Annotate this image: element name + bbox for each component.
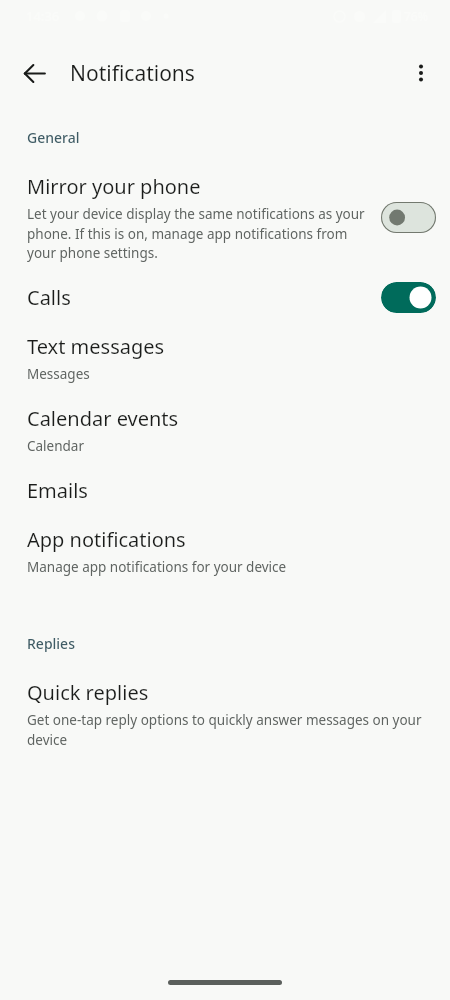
button[interactable]: Back: [12, 51, 56, 95]
staticText: Emails: [27, 477, 88, 504]
staticText: Notifications: [70, 59, 195, 88]
staticText: Get one-tap reply options to quickly ans…: [27, 711, 432, 749]
staticText: Calls: [27, 284, 381, 311]
staticText: Manage app notifications for your device: [27, 558, 287, 576]
button[interactable]: Emails: [0, 477, 450, 504]
staticText: Text messages: [27, 333, 165, 360]
staticText: Let your device display the same notific…: [27, 205, 367, 262]
staticText: Calendar: [27, 437, 84, 455]
staticText: Calendar events: [27, 405, 179, 432]
staticText: App notifications: [27, 526, 186, 553]
staticText: General: [27, 128, 80, 147]
button[interactable]: Calls: [0, 282, 450, 313]
button[interactable]: Mirror your phone: [0, 173, 450, 262]
button[interactable]: Calendar events: [0, 405, 450, 455]
staticText: Mirror your phone: [27, 173, 201, 200]
button[interactable]: More options: [399, 51, 443, 95]
button[interactable]: Mirror your phone toggle, off: [381, 202, 436, 233]
button[interactable]: Calls toggle, on: [381, 282, 436, 313]
staticText: Quick replies: [27, 679, 149, 706]
staticText: Messages: [27, 365, 90, 383]
staticText: Replies: [27, 634, 75, 653]
button[interactable]: Text messages: [0, 333, 450, 383]
button[interactable]: App notifications: [0, 526, 450, 576]
button[interactable]: Quick replies: [0, 679, 450, 749]
